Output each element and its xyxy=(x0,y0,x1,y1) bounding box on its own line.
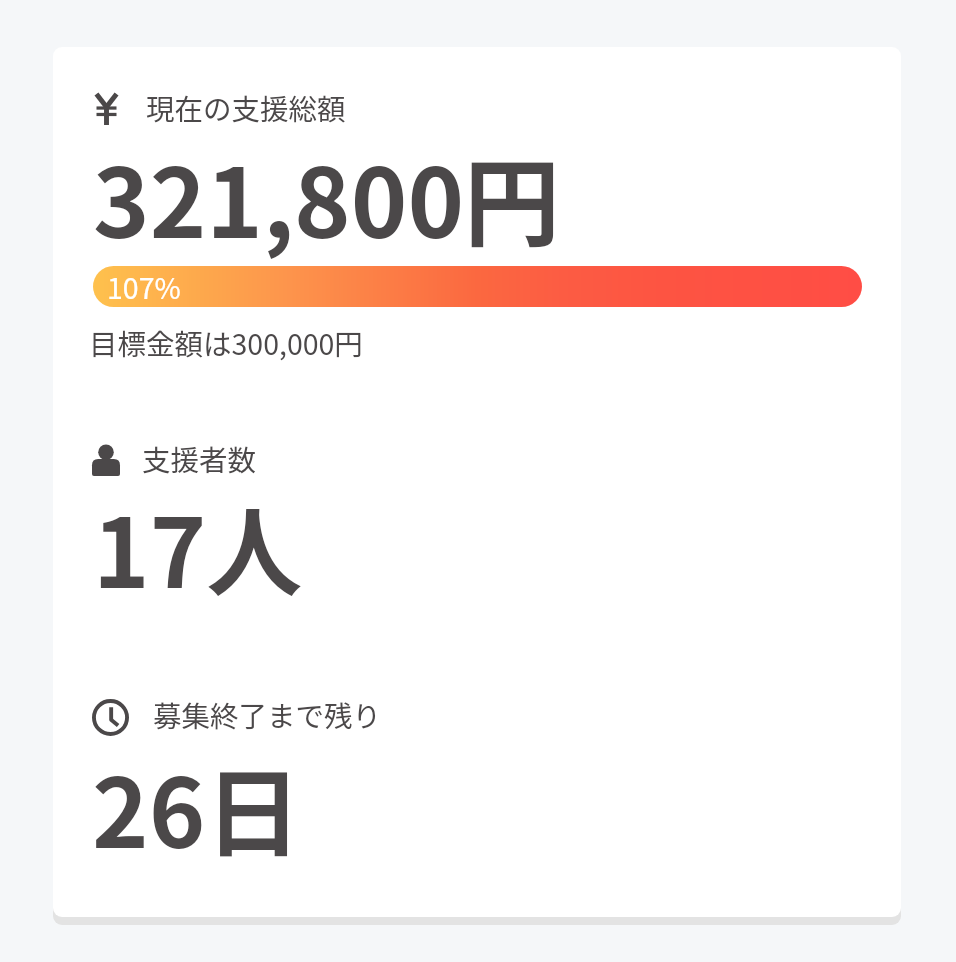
staticText: 26日 xyxy=(92,737,302,876)
button[interactable]: Japanese yen xyxy=(53,67,901,367)
other: Supporters xyxy=(92,445,120,476)
button[interactable]: Time remaining xyxy=(53,683,901,868)
staticText: 107% xyxy=(107,266,181,307)
other: Time remaining xyxy=(92,699,129,736)
staticText: 現在の支援総額 xyxy=(146,87,346,128)
staticText: 321,800円 xyxy=(93,127,561,266)
staticText: 17人 xyxy=(93,477,303,616)
button[interactable]: Supporters xyxy=(53,427,901,607)
other: Japanese yen xyxy=(94,92,119,125)
staticText: 目標金額は300,000円 xyxy=(89,322,363,363)
staticText: 募集終了まで残り xyxy=(153,694,382,735)
staticText: 支援者数 xyxy=(142,438,257,479)
